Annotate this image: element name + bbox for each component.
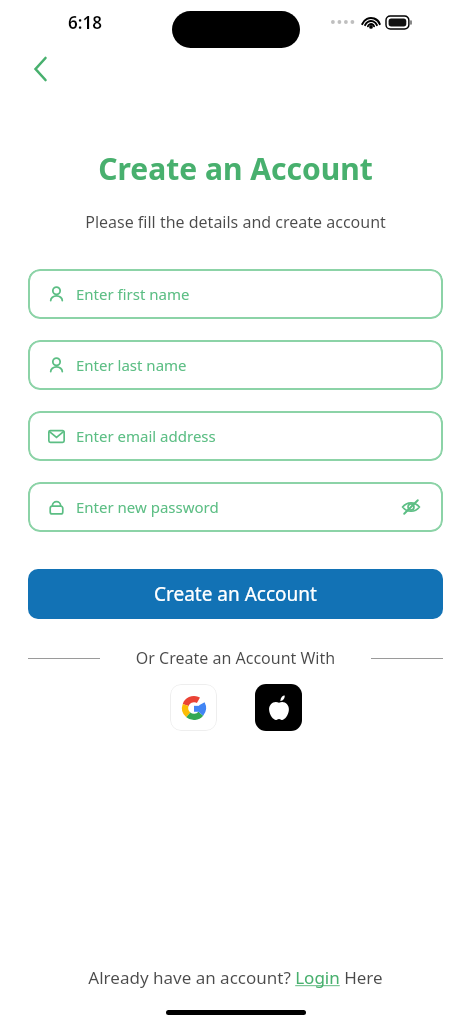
staticText: Enter new password xyxy=(76,497,399,517)
button[interactable]: Enter new password xyxy=(28,482,443,532)
button[interactable]: Enter email address xyxy=(28,411,443,461)
staticText: Enter first name xyxy=(76,284,423,304)
staticText: Already have an account? Login Here xyxy=(88,966,383,989)
button[interactable]: Sign up with Apple xyxy=(255,684,302,731)
staticText: Or Create an Account With xyxy=(100,647,371,669)
button[interactable]: Show password xyxy=(399,495,423,519)
button[interactable]: Enter first name xyxy=(28,269,443,319)
staticText: Create an Account xyxy=(154,581,317,607)
staticText: Enter email address xyxy=(76,426,423,446)
button[interactable]: Back xyxy=(24,52,58,86)
staticText: Enter last name xyxy=(76,355,423,375)
button[interactable]: Already have an account? Login Here xyxy=(0,966,471,989)
staticText: Create an Account xyxy=(0,148,471,189)
button[interactable]: Sign up with Google xyxy=(170,684,217,731)
staticText: 6:18 xyxy=(68,11,102,34)
button[interactable]: Enter last name xyxy=(28,340,443,390)
staticText: Please fill the details and create accou… xyxy=(0,211,471,233)
button[interactable]: Create an Account xyxy=(28,569,443,619)
